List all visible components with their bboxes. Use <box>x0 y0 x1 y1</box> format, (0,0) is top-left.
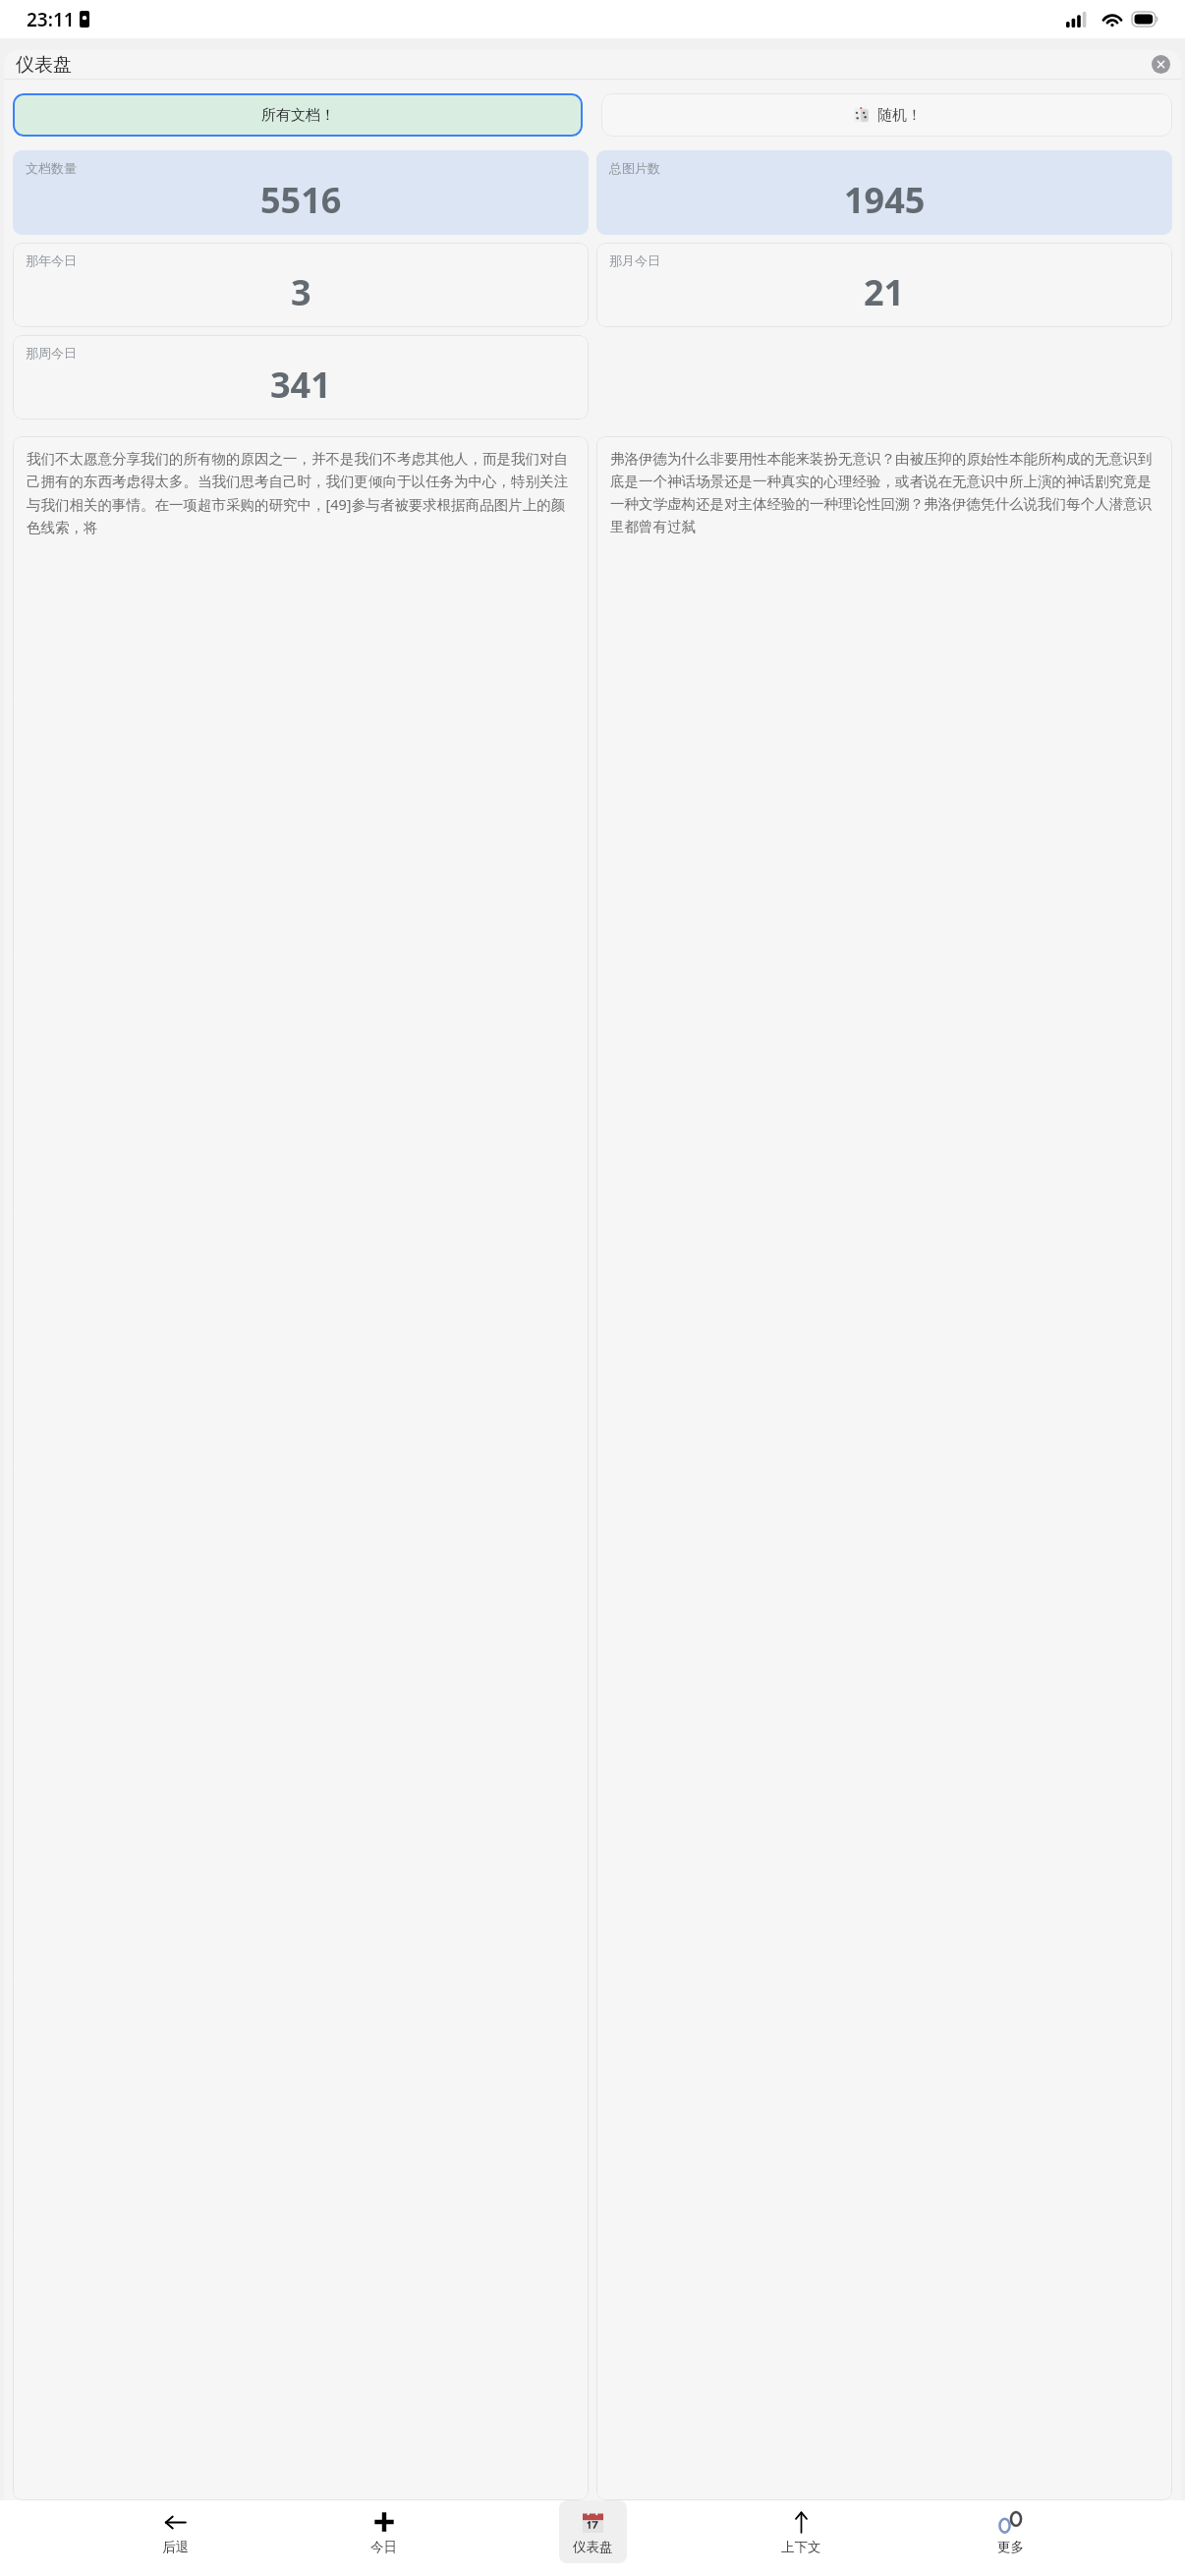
staticText: 所有文档！ <box>261 106 335 125</box>
other: 上下文 <box>790 2511 813 2534</box>
button[interactable]: 那月今日 <box>596 243 1172 327</box>
staticText: 总图片数 <box>609 160 660 176</box>
button[interactable]: 所有文档！ <box>13 93 583 137</box>
button[interactable]: 那周今日 <box>13 335 589 420</box>
button[interactable]: 总图片数 <box>596 150 1172 235</box>
button[interactable]: 今日 <box>350 2500 418 2563</box>
staticText: 那年今日 <box>26 252 77 268</box>
staticText: 仪表盘 <box>573 2539 613 2555</box>
button[interactable]: 那年今日 <box>13 243 589 327</box>
staticText: 我们不太愿意分享我们的所有物的原因之一，并不是我们不考虑其他人，而是我们对自己拥… <box>27 450 575 536</box>
staticText: 后退 <box>162 2539 189 2555</box>
staticText: 今日 <box>370 2539 397 2555</box>
staticText: 更多 <box>997 2539 1024 2555</box>
button[interactable]: 弗洛伊德为什么非要用性本能来装扮无意识？由被压抑的原始性本能所构成的无意识到底是… <box>596 436 1172 2500</box>
other: 今日 <box>373 2511 395 2533</box>
staticText: 5516 <box>260 176 342 224</box>
staticText: 23:11 <box>27 7 75 32</box>
staticText: 3 <box>291 268 311 316</box>
staticText: 那月今日 <box>609 252 660 268</box>
other: 仪表盘 <box>583 2512 603 2533</box>
button[interactable]: 文档数量 <box>13 150 589 235</box>
staticText: 1945 <box>844 176 926 224</box>
button[interactable]: 后退 <box>141 2500 209 2563</box>
staticText: 文档数量 <box>26 160 77 176</box>
button[interactable]: 更多 <box>977 2500 1044 2563</box>
button[interactable]: 随机！ <box>601 93 1172 137</box>
button[interactable]: 上下文 <box>767 2500 835 2563</box>
staticText: 弗洛伊德为什么非要用性本能来装扮无意识？由被压抑的原始性本能所构成的无意识到底是… <box>610 450 1158 535</box>
button[interactable]: 关闭 <box>1152 55 1170 74</box>
staticText: 随机！ <box>877 106 922 125</box>
staticText: 那周今日 <box>26 345 77 361</box>
button[interactable]: 我们不太愿意分享我们的所有物的原因之一，并不是我们不考虑其他人，而是我们对自己拥… <box>13 436 589 2500</box>
staticText: 上下文 <box>781 2539 821 2555</box>
button[interactable]: 仪表盘 <box>559 2500 627 2563</box>
staticText: 21 <box>864 268 905 316</box>
staticText: 仪表盘 <box>16 53 72 77</box>
other: 更多 <box>999 2511 1022 2534</box>
staticText: 341 <box>270 361 331 409</box>
other: 后退 <box>164 2511 187 2534</box>
